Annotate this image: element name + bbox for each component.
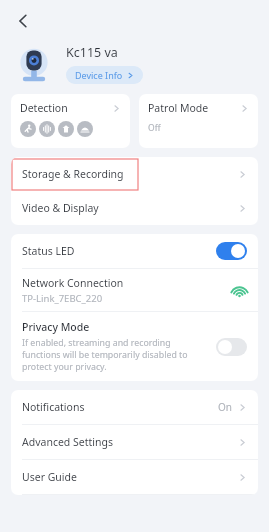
button[interactable]: Notifications <box>11 390 258 424</box>
button[interactable]: Back <box>6 4 40 38</box>
button[interactable]: Toggle off <box>216 338 247 356</box>
staticText: Network Connection <box>22 276 124 290</box>
staticText: Kc115 va <box>66 44 118 61</box>
button[interactable]: Video & Display <box>11 191 258 225</box>
staticText: On <box>218 400 232 414</box>
button[interactable]: Toggle on <box>216 242 247 260</box>
staticText: Video & Display <box>22 201 99 215</box>
staticText: Off <box>148 122 161 134</box>
staticText: Storage & Recording <box>22 167 124 181</box>
staticText: Patrol Mode <box>148 101 209 115</box>
button[interactable]: Storage & Recording <box>11 157 258 191</box>
button[interactable]: Network Connection <box>11 269 258 311</box>
button[interactable]: Device Info <box>66 66 143 84</box>
staticText: Advanced Settings <box>22 435 113 449</box>
button[interactable]: Advanced Settings <box>11 425 258 459</box>
staticText: Privacy Mode <box>22 320 90 334</box>
staticText: Notifications <box>22 400 85 414</box>
staticText: Status LED <box>22 244 75 258</box>
staticText: Device Info <box>75 69 123 81</box>
other: Wi-Fi connected <box>232 283 247 298</box>
button[interactable]: Status LED <box>11 234 258 268</box>
button[interactable]: Privacy Mode <box>11 312 258 381</box>
button[interactable]: Detection <box>11 94 130 148</box>
button[interactable]: Patrol Mode <box>139 94 258 148</box>
staticText: User Guide <box>22 470 77 484</box>
button[interactable]: User Guide <box>11 460 258 494</box>
staticText: If enabled, streaming and recording func… <box>22 337 188 373</box>
staticText: Detection <box>20 101 68 115</box>
staticText: TP-Link_7EBC_220 <box>22 292 103 305</box>
